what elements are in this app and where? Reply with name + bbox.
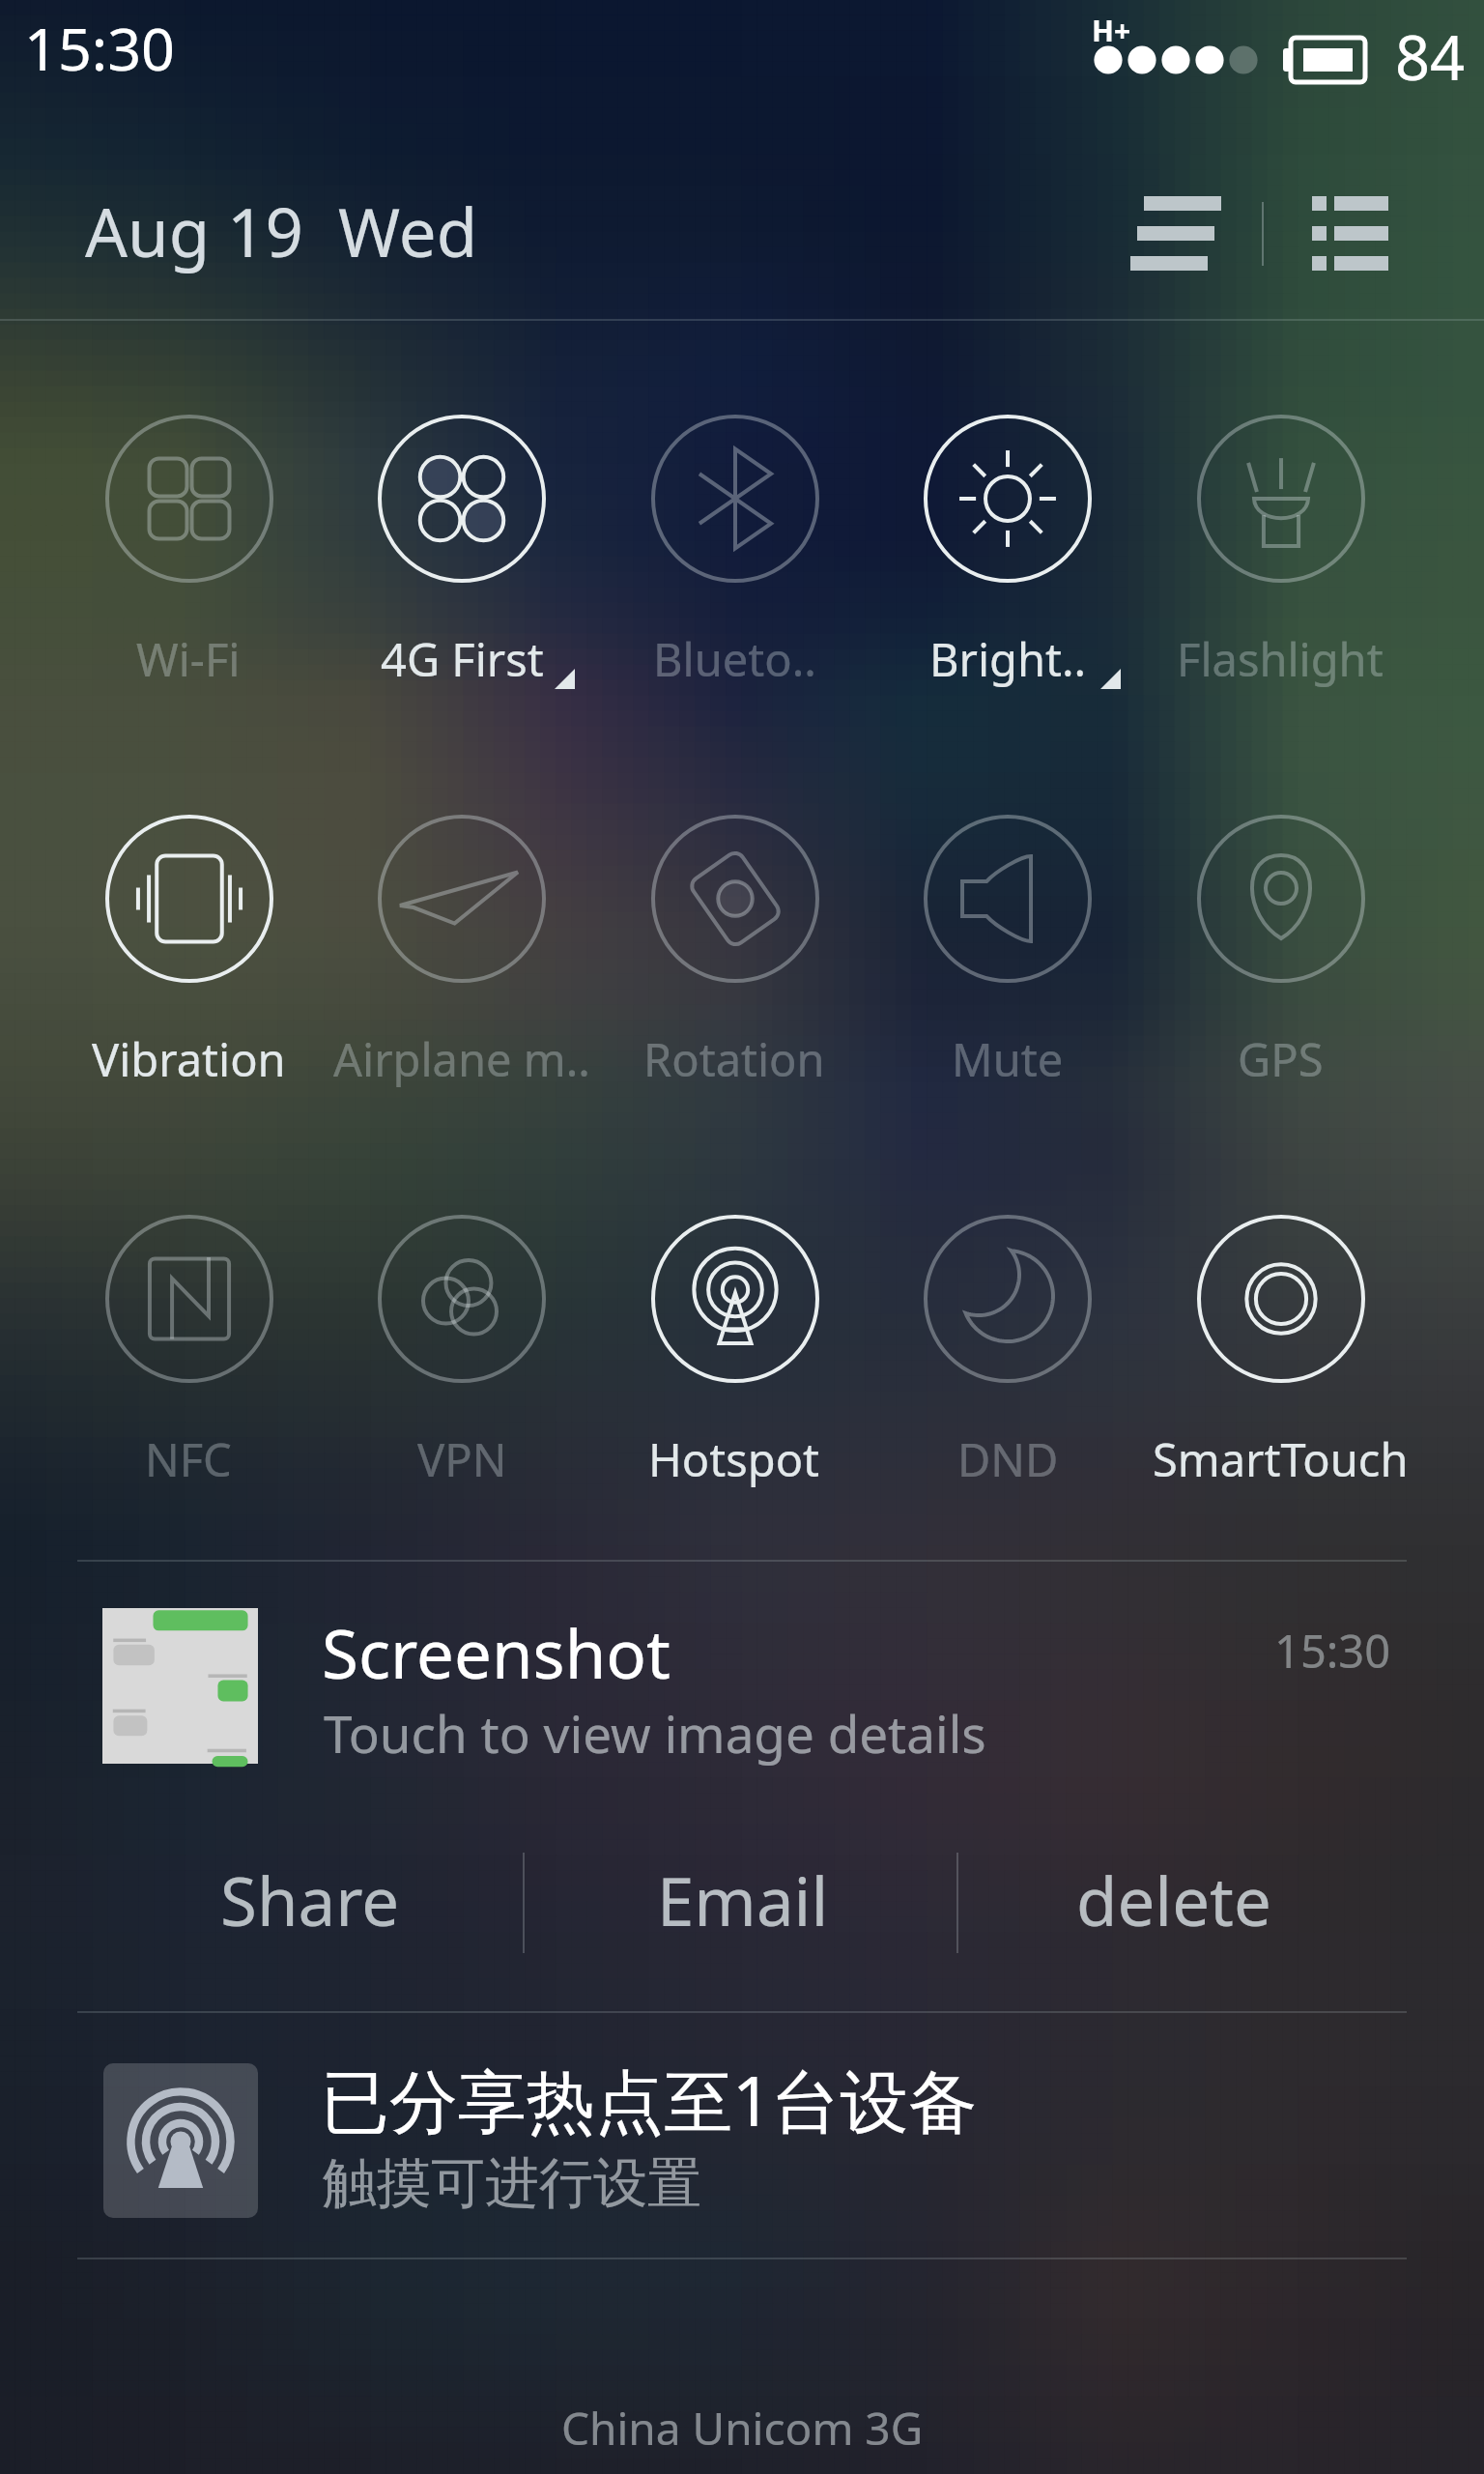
staticText: VPN (417, 1428, 507, 1490)
button[interactable]: Screenshot (0, 1585, 1484, 1817)
staticText: GPS (1238, 1028, 1324, 1090)
staticText: SmartTouch (1153, 1428, 1409, 1490)
staticText: 已分享热点至1台设备 (321, 2053, 978, 2146)
staticText: DND (957, 1428, 1059, 1490)
staticText: Touch to view image details (324, 1698, 986, 1768)
staticText: Email (657, 1855, 829, 1945)
staticText: Wi-Fi (136, 628, 241, 690)
button[interactable] (1144, 1190, 1417, 1509)
button[interactable] (870, 1190, 1144, 1509)
button[interactable] (325, 790, 598, 1108)
staticText: Screenshot (322, 1607, 671, 1698)
button[interactable] (1144, 389, 1417, 708)
button[interactable] (52, 1190, 326, 1509)
staticText: Bright.. (929, 628, 1087, 690)
staticText: NFC (145, 1428, 232, 1490)
staticText: China Unicom 3G (561, 2398, 924, 2459)
staticText: Hotspot (648, 1428, 820, 1490)
button[interactable]: Email (524, 1827, 962, 1973)
staticText: Vibration (92, 1028, 286, 1090)
button[interactable]: Detail list (1302, 176, 1418, 292)
button[interactable] (325, 389, 598, 708)
staticText: H+ (1092, 11, 1131, 50)
button[interactable] (52, 389, 326, 708)
staticText: delete (1076, 1855, 1271, 1945)
staticText: Aug 19 Wed (85, 186, 478, 276)
button[interactable] (325, 1190, 598, 1509)
button[interactable] (52, 790, 326, 1108)
staticText: Airplane m.. (333, 1028, 590, 1090)
staticText: Share (220, 1855, 400, 1945)
staticText: Mute (952, 1028, 1064, 1090)
staticText: 4G First (381, 628, 544, 690)
button[interactable]: delete (962, 1827, 1385, 1973)
button[interactable]: 已分享热点至1台设备 (0, 2039, 1484, 2258)
button[interactable]: Compact list (1108, 176, 1224, 292)
staticText: 15:30 (24, 8, 175, 88)
button[interactable] (598, 790, 871, 1108)
button[interactable] (870, 389, 1144, 708)
button[interactable] (598, 389, 871, 708)
staticText: 触摸可进行设置 (323, 2149, 701, 2218)
button[interactable] (598, 1190, 871, 1509)
staticText: Blueto.. (653, 628, 816, 690)
staticText: Rotation (643, 1028, 825, 1090)
button[interactable] (870, 790, 1144, 1108)
staticText: Flashlight (1177, 628, 1384, 690)
staticText: 15:30 (1274, 1620, 1391, 1682)
button[interactable] (1144, 790, 1417, 1108)
staticText: 84 (1395, 15, 1466, 99)
button[interactable]: Share (96, 1827, 524, 1973)
